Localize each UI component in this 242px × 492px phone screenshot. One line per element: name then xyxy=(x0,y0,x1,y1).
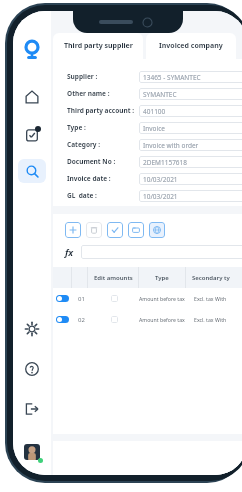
button[interactable]: 2DEM1157618 xyxy=(139,156,242,168)
button[interactable]: Invoice with order xyxy=(139,139,242,151)
button[interactable]: Validate xyxy=(107,222,123,238)
staticText: 13465 - SYMANTEC xyxy=(143,73,201,82)
staticText: Invoice with order xyxy=(143,141,199,150)
staticText: 2DEM1157618 xyxy=(143,158,187,167)
button[interactable]: Add xyxy=(65,222,81,238)
button[interactable]: Third party supplier xyxy=(53,33,143,59)
button[interactable]: Search xyxy=(18,159,46,183)
staticText: 10/03/2021 xyxy=(143,175,178,184)
button[interactable]: Edit amounts 02 xyxy=(111,316,118,323)
staticText: Supplier : xyxy=(67,72,139,81)
button[interactable]: Folder xyxy=(128,222,144,238)
button[interactable]: Logo xyxy=(19,37,45,63)
button[interactable]: SYMANTEC xyxy=(139,88,242,100)
staticText: Type xyxy=(155,274,169,282)
staticText: Document No : xyxy=(67,157,139,166)
staticText: Excl. tax With xyxy=(194,295,227,302)
button[interactable]: Invoice xyxy=(139,122,242,134)
button[interactable]: Toggle 01 xyxy=(56,295,69,302)
staticText: 02 xyxy=(78,316,85,324)
button[interactable]: Delete xyxy=(86,222,102,238)
staticText: Edit amounts xyxy=(94,274,133,282)
button[interactable]: Tasks xyxy=(20,123,44,147)
staticText: 401100 xyxy=(143,107,166,116)
staticText: Type : xyxy=(67,123,139,132)
staticText: Other name : xyxy=(67,89,139,98)
staticText: Invoice xyxy=(143,124,165,133)
staticText: Invoice date : xyxy=(67,174,139,183)
button[interactable]: 10/03/2021 xyxy=(139,173,242,185)
staticText: 01 xyxy=(78,295,85,303)
button[interactable]: Home xyxy=(20,85,44,109)
button[interactable]: Logout xyxy=(20,397,44,421)
staticText: Excl. tax With xyxy=(194,316,227,323)
staticText: Third party supplier xyxy=(64,41,133,51)
staticText: GL date : xyxy=(67,191,139,200)
button[interactable]: 13465 - SYMANTEC xyxy=(139,71,242,83)
staticText: Invoiced company xyxy=(159,41,223,51)
button[interactable]: Profile xyxy=(23,443,41,461)
staticText: SYMANTEC xyxy=(143,90,177,99)
staticText: Secondary ty xyxy=(192,274,230,282)
button[interactable]: Toggle 02 xyxy=(53,309,242,330)
staticText: Amount before tax xyxy=(139,316,185,323)
button[interactable]: Settings xyxy=(20,317,44,341)
button[interactable] xyxy=(81,245,242,259)
button[interactable]: 401100 xyxy=(139,105,242,117)
button[interactable]: Toggle 02 xyxy=(56,316,69,323)
button[interactable]: Globe xyxy=(149,222,165,238)
staticText: Amount before tax xyxy=(139,295,185,302)
button[interactable]: 10/03/2021 xyxy=(139,190,242,202)
button[interactable]: Toggle 01 xyxy=(53,288,242,309)
staticText: Third party account : xyxy=(67,106,139,115)
staticText: Category : xyxy=(67,140,139,149)
staticText: fx xyxy=(65,246,74,258)
button[interactable]: Invoiced company xyxy=(146,33,236,59)
button[interactable]: Help xyxy=(20,357,44,381)
button[interactable]: Edit amounts 01 xyxy=(111,295,118,302)
staticText: 10/03/2021 xyxy=(143,192,178,201)
